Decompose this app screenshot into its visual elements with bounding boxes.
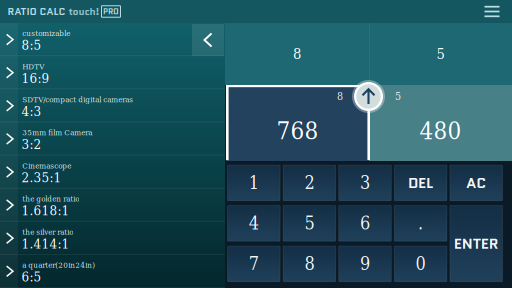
staticText: touch! [65,4,99,19]
staticText: 1 [249,172,259,193]
button[interactable]: the golden ratio [0,188,225,222]
staticText: DEL [408,172,433,193]
staticText: 8 [293,45,301,63]
staticText: ENTER [454,233,499,254]
staticText: customizable [22,29,70,38]
staticText: 6 [360,213,370,234]
staticText: 5 [436,45,444,63]
staticText: 1.618:1 [21,203,69,218]
staticText: HDTV [22,62,44,71]
button[interactable]: 35mm film Camera [0,122,225,155]
staticText: 5 [395,90,401,102]
button[interactable]: 9 [339,246,391,282]
staticText: . [418,213,423,234]
button[interactable]: 2 [283,165,336,201]
staticText: AC [466,172,486,193]
staticText: 768 [276,117,318,145]
button[interactable]: 4 [227,205,280,241]
button[interactable]: ENTER [450,205,502,282]
staticText: 480 [419,117,461,145]
staticText: 1.414:1 [21,236,69,251]
button[interactable]: Cinemascope [0,155,225,188]
button[interactable]: DEL [394,165,447,201]
staticText: 6:5 [21,269,41,285]
staticText: 9 [360,253,370,274]
staticText: 8:5 [21,37,41,53]
button[interactable]: 7 [227,246,280,282]
staticText: 4:3 [21,104,41,119]
staticText: SDTV/compact digital cameras [22,95,133,104]
button[interactable]: 3 [339,165,391,201]
button[interactable]: 0 [394,246,447,282]
staticText: 8 [337,90,343,102]
staticText: a quarter(20in24in) [22,260,95,270]
button[interactable]: . [394,205,447,241]
staticText: 35mm film Camera [22,128,92,137]
button[interactable]: customizable [0,23,225,56]
button[interactable]: 5 [283,205,336,241]
button[interactable]: SDTV/compact digital cameras [0,89,225,122]
staticText: PRO [103,6,119,17]
button[interactable]: Swap values [350,78,386,114]
button[interactable]: a quarter(20in24in) [0,255,225,288]
staticText: 2.35:1 [21,170,61,185]
button[interactable]: 1 [227,165,280,201]
staticText: 7 [249,253,259,274]
button[interactable]: Menu [477,0,507,23]
staticText: 8 [304,253,314,274]
staticText: 4 [249,213,259,234]
staticText: Cinemascope [22,161,71,170]
staticText: the golden ratio [22,194,79,203]
button[interactable]: Collapse list [192,24,224,56]
button[interactable]: HDTV [0,56,225,89]
staticText: 3 [360,172,370,193]
staticText: RATIO CALC [7,4,65,19]
staticText: 3:2 [21,137,41,152]
staticText: the silver ratio [22,227,73,236]
button[interactable]: 6 [339,205,391,241]
staticText: 0 [416,253,426,274]
staticText: 2 [304,172,314,193]
button[interactable]: the silver ratio [0,222,225,255]
staticText: 16:9 [21,70,49,86]
button[interactable]: 8 [283,246,336,282]
staticText: 5 [304,213,314,234]
button[interactable]: AC [450,165,502,201]
